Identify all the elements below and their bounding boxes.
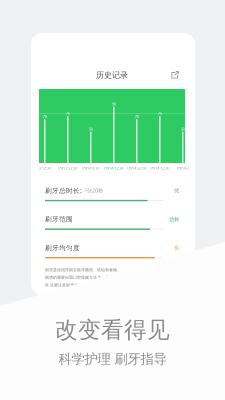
staticText: 75 [158, 110, 162, 116]
button[interactable]: 导出 [171, 71, 179, 79]
staticText: 残渣的重要自我口腔保健方法之一,可以 [45, 275, 114, 280]
staticText: 90 [112, 101, 116, 106]
button[interactable]: 刷牙总时长: [45, 186, 179, 201]
staticText: 优 [174, 187, 179, 194]
staticText: 09/13 22:30 [58, 165, 77, 171]
staticText: 75 [66, 110, 70, 116]
staticText: 良 [174, 245, 179, 251]
staticText: 历史记录 [96, 70, 128, 80]
staticText: 09/14 8:30 [82, 165, 99, 171]
staticText: 刷牙是使用牙刷去除牙菌斑、软垢和食物 [45, 267, 117, 272]
staticText: 科学护理 刷牙指导 [58, 351, 166, 367]
button[interactable]: 历史记录 [39, 61, 185, 89]
staticText: 09/14 22:30 [127, 165, 146, 171]
button[interactable]: 刷牙均匀度 [45, 244, 179, 258]
staticText: 刷牙范围 [45, 215, 73, 223]
staticText: 刷牙均匀度 [45, 244, 80, 252]
staticText: 刷牙总时长: [45, 186, 82, 195]
staticText: 达标 [169, 216, 179, 223]
button[interactable]: 刷牙范围 [45, 215, 179, 230]
staticText: 改变看得见 [55, 316, 170, 344]
staticText: 2分20秒 [84, 187, 103, 194]
staticText: 70 [135, 114, 139, 119]
staticText: 50 [89, 126, 93, 131]
staticText: 09/14 12:30 [150, 165, 169, 171]
staticText: 外,且要注意刷牙的时间、力度和姿势。 [45, 282, 114, 288]
staticText: 50 [181, 126, 185, 131]
staticText: 70 [43, 114, 47, 119]
staticText: 09/14 2 [177, 165, 189, 171]
staticText: 09/14 12:30 [104, 165, 123, 171]
staticText: 3 12:30 [39, 165, 51, 171]
